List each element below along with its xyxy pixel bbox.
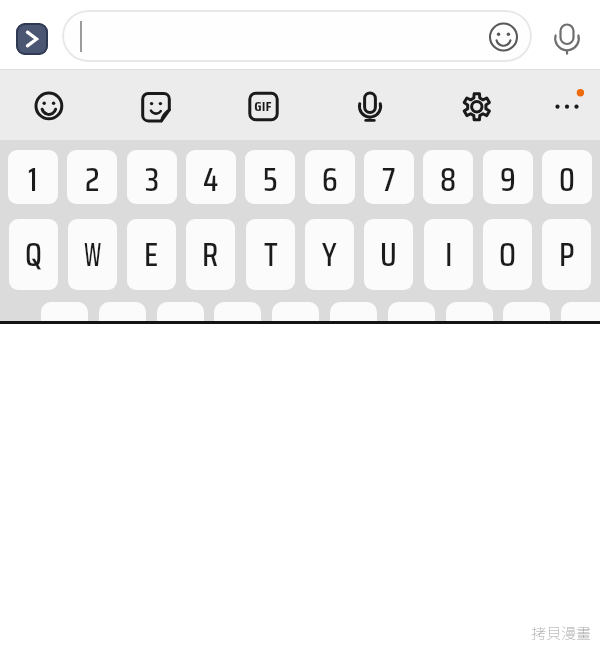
staticText: O xyxy=(499,229,516,281)
button[interactable]: E xyxy=(127,219,176,290)
button[interactable] xyxy=(26,84,71,129)
button[interactable] xyxy=(454,84,499,129)
staticText: 9 xyxy=(500,154,516,204)
button[interactable]: T xyxy=(246,219,295,290)
button[interactable] xyxy=(41,302,88,321)
button[interactable] xyxy=(548,14,586,60)
staticText: P xyxy=(559,229,575,281)
button[interactable] xyxy=(157,302,204,321)
staticText: 1 xyxy=(28,154,38,204)
button[interactable]: 8 xyxy=(423,150,473,204)
button[interactable] xyxy=(347,84,392,129)
button[interactable] xyxy=(99,302,146,321)
button[interactable]: I xyxy=(424,219,473,290)
button[interactable] xyxy=(446,302,493,321)
button[interactable] xyxy=(561,302,600,321)
button[interactable]: P xyxy=(542,219,591,290)
button[interactable]: 1 xyxy=(8,150,58,204)
button[interactable] xyxy=(62,10,532,62)
staticText: 0 xyxy=(559,154,575,204)
button[interactable] xyxy=(214,302,261,321)
staticText: 3 xyxy=(145,154,160,204)
staticText: 2 xyxy=(85,154,100,204)
staticText: W xyxy=(84,229,102,281)
button[interactable]: 2 xyxy=(67,150,117,204)
staticText: E xyxy=(144,229,159,281)
staticText: 8 xyxy=(440,154,457,204)
staticText: U xyxy=(380,229,397,281)
button[interactable] xyxy=(16,23,48,55)
button[interactable]: 9 xyxy=(483,150,533,204)
button[interactable] xyxy=(545,84,593,129)
staticText: 4 xyxy=(203,154,219,204)
button[interactable]: GIF xyxy=(240,84,287,129)
staticText: 5 xyxy=(263,154,278,204)
button[interactable] xyxy=(503,302,550,321)
button[interactable] xyxy=(330,302,377,321)
button[interactable] xyxy=(388,302,435,321)
button[interactable]: Q xyxy=(9,219,58,290)
staticText: Y xyxy=(322,229,337,281)
button[interactable] xyxy=(272,302,319,321)
button[interactable]: U xyxy=(364,219,413,290)
staticText: GIF xyxy=(254,97,273,117)
staticText: Q xyxy=(25,229,42,281)
button[interactable]: 5 xyxy=(245,150,295,204)
button[interactable]: 0 xyxy=(542,150,592,204)
button[interactable]: Y xyxy=(305,219,354,290)
staticText: R xyxy=(202,229,219,281)
button[interactable]: R xyxy=(186,219,235,290)
staticText: I xyxy=(445,229,453,281)
staticText: 6 xyxy=(322,154,338,204)
button[interactable]: 7 xyxy=(364,150,414,204)
button[interactable]: 3 xyxy=(127,150,177,204)
staticText: T xyxy=(264,229,278,281)
button[interactable]: 4 xyxy=(186,150,236,204)
button[interactable] xyxy=(133,84,178,129)
staticText: 7 xyxy=(382,154,396,204)
button[interactable]: W xyxy=(68,219,117,290)
button[interactable]: 6 xyxy=(305,150,355,204)
staticText: 拷貝漫畫 xyxy=(531,622,592,644)
button[interactable]: O xyxy=(483,219,532,290)
